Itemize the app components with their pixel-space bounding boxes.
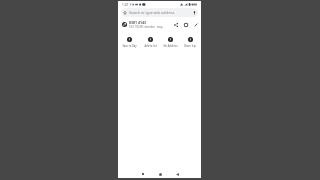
staticText: Search or type web address: [129, 10, 175, 15]
button[interactable]: Back: [173, 170, 181, 178]
button[interactable]: Save: [182, 21, 189, 28]
button[interactable]: Map pin: [121, 8, 198, 17]
button[interactable]: Home: [156, 170, 164, 178]
staticText: Save to Day: [122, 44, 137, 48]
staticText: 8381 4143: [129, 20, 146, 25]
button[interactable]: Share trip: [180, 36, 200, 48]
other: Voice search: [193, 11, 196, 15]
button[interactable]: Edit: [192, 21, 199, 28]
button[interactable]: Save to Day: [119, 36, 140, 48]
button[interactable]: Add to list: [140, 36, 160, 48]
staticText: No Address: [163, 44, 178, 48]
staticText: Share trip: [184, 44, 196, 48]
button[interactable]: Recents: [139, 170, 147, 178]
staticText: 100 100 W chamber: [129, 25, 156, 29]
button[interactable]: 8381 4143: [118, 18, 201, 30]
other: Map pin: [123, 11, 127, 15]
staticText: map: [156, 25, 163, 29]
button[interactable]: No Address: [160, 36, 180, 48]
staticText: Add to list: [144, 44, 157, 48]
staticText: 1:47: [122, 3, 129, 7]
button[interactable]: Share: [172, 21, 179, 28]
